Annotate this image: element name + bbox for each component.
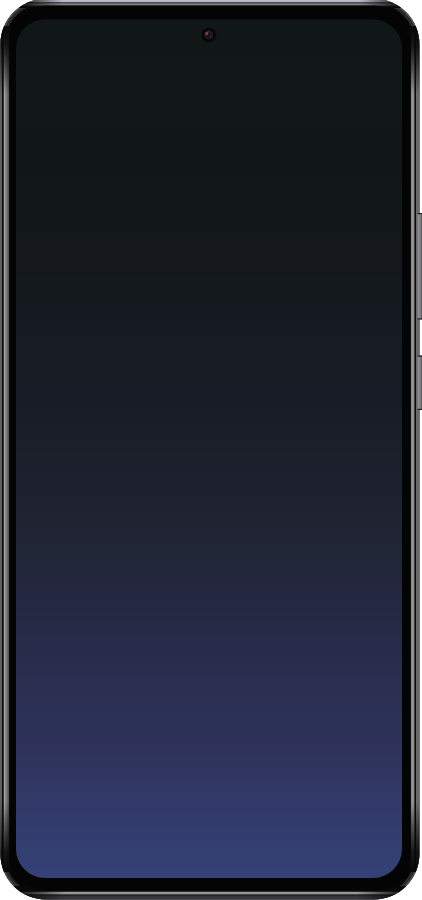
button[interactable]: Power [414, 355, 422, 410]
button[interactable]: Phone display [16, 20, 402, 878]
button[interactable]: Volume [414, 213, 422, 320]
